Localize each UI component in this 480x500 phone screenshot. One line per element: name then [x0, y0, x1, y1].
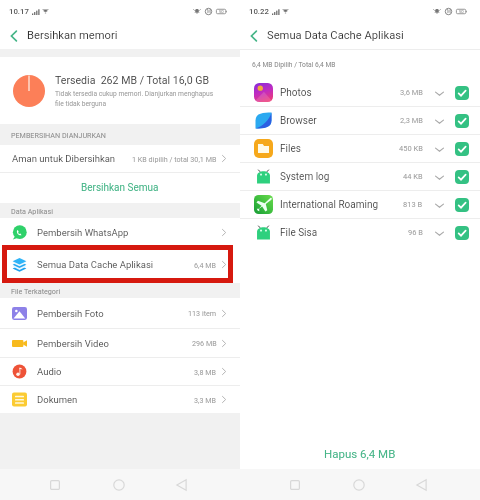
button[interactable]: Semua Data Cache Aplikasi — [0, 246, 240, 283]
button[interactable]: Home — [327, 469, 390, 500]
staticText: 96 B — [408, 228, 423, 237]
button[interactable]: Back — [390, 469, 453, 500]
button[interactable]: Expand — [434, 88, 444, 98]
staticText: 813 B — [403, 200, 423, 209]
button[interactable]: Selected — [455, 114, 469, 128]
staticText: Pembersih Video — [37, 338, 109, 349]
button[interactable]: Back — [245, 27, 263, 45]
staticText: Dokumen — [37, 394, 78, 405]
staticText: International Roaming — [280, 199, 379, 211]
button[interactable]: Aman untuk Dibersihkan — [0, 145, 240, 172]
staticText: 2,3 MB — [400, 116, 423, 125]
button[interactable]: Audio — [0, 358, 240, 385]
staticText: 6,4 MB — [194, 261, 217, 269]
staticText: Files — [280, 143, 301, 155]
button[interactable]: Recent apps — [23, 469, 87, 500]
button[interactable]: Selected — [455, 198, 469, 212]
staticText: 50 — [219, 9, 224, 14]
staticText: M — [207, 9, 211, 14]
staticText: Audio — [37, 366, 62, 377]
staticText: 44 KB — [403, 172, 423, 181]
staticText: 296 MB — [192, 339, 217, 347]
button[interactable]: Home — [87, 469, 150, 500]
staticText: 113 item — [188, 309, 217, 317]
staticText: 3,3 MB — [194, 396, 217, 404]
button[interactable]: Selected — [455, 86, 469, 100]
staticText: Hapus 6,4 MB — [324, 447, 396, 460]
button[interactable]: Pembersih Foto — [0, 298, 240, 328]
staticText: Data Aplikasi — [11, 207, 53, 215]
button[interactable]: System log — [240, 163, 480, 190]
staticText: Photos — [280, 87, 312, 99]
button[interactable]: Recent apps — [263, 469, 327, 500]
button[interactable]: Dokumen — [0, 386, 240, 413]
button[interactable]: Back — [5, 27, 23, 45]
button[interactable]: Expand — [434, 200, 444, 210]
button[interactable]: Expand — [434, 116, 444, 126]
staticText: 10.17 — [9, 7, 29, 16]
staticText: PEMBERSIHAN DIANJURKAN — [11, 131, 106, 139]
staticText: Tersedia 262 MB / Total 16,0 GB — [55, 74, 210, 86]
staticText: File Terkategori — [11, 287, 61, 295]
staticText: Aman untuk Dibersihkan — [12, 153, 116, 164]
staticText: Browser — [280, 115, 317, 127]
button[interactable]: Pembersih Video — [0, 329, 240, 357]
staticText: Semua Data Cache Aplikasi — [37, 259, 154, 270]
staticText: File Sisa — [280, 227, 318, 239]
staticText: Tidak tersedia cukup memori. Dianjurkan … — [55, 90, 214, 98]
button[interactable]: Pembersih WhatsApp — [0, 218, 240, 246]
button[interactable]: Selected — [455, 142, 469, 156]
staticText: Bersihkan Semua — [81, 182, 159, 194]
staticText: System log — [280, 171, 330, 183]
button[interactable]: Hapus 6,4 MB — [240, 437, 480, 469]
button[interactable]: Expand — [434, 172, 444, 182]
button[interactable]: Selected — [455, 226, 469, 240]
button[interactable]: Files — [240, 135, 480, 162]
button[interactable]: Expand — [434, 228, 444, 238]
button[interactable]: Selected — [455, 170, 469, 184]
button[interactable]: Photos — [240, 79, 480, 106]
button[interactable]: Expand — [434, 144, 444, 154]
staticText: 1 KB dipilih / total 30,1 MB — [132, 155, 217, 163]
staticText: file tidak berguna — [55, 100, 107, 108]
staticText: 3,8 MB — [194, 368, 217, 376]
staticText: Semua Data Cache Aplikasi — [267, 29, 404, 42]
staticText: M — [447, 9, 451, 14]
staticText: 3,6 MB — [400, 88, 423, 97]
staticText: 6,4 MB Dipilih / Total 6,4 MB — [252, 61, 336, 69]
button[interactable]: Browser — [240, 107, 480, 134]
button[interactable]: Bersihkan Semua — [0, 173, 240, 203]
button[interactable]: Back — [150, 469, 213, 500]
staticText: Pembersih Foto — [37, 308, 104, 319]
button[interactable]: International Roaming — [240, 191, 480, 218]
staticText: Pembersih WhatsApp — [37, 227, 129, 238]
staticText: 50 — [459, 9, 464, 14]
button[interactable]: File Sisa — [240, 219, 480, 246]
staticText: 10.22 — [249, 7, 269, 16]
staticText: Bersihkan memori — [27, 29, 118, 42]
staticText: 450 KB — [399, 144, 423, 153]
